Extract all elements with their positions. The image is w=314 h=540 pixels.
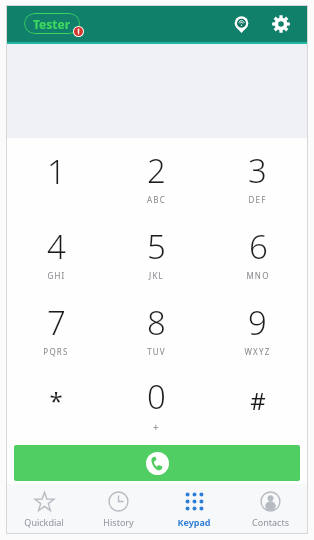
button[interactable]: Keypad <box>156 484 232 534</box>
staticText: 5 <box>147 224 166 269</box>
staticText: JKL <box>149 270 164 281</box>
button[interactable]: 5 <box>106 214 207 290</box>
staticText: 3 <box>248 148 267 193</box>
staticText: DEF <box>248 194 267 205</box>
button[interactable]: Tester <box>24 13 80 34</box>
staticText: Tester <box>33 16 71 32</box>
staticText: GHI <box>47 270 66 281</box>
button[interactable]: Location <box>226 9 256 39</box>
staticText: MNO <box>246 270 270 281</box>
button[interactable]: 7 <box>6 290 106 366</box>
button[interactable]: 0 <box>106 366 207 442</box>
staticText: 4 <box>47 224 66 269</box>
staticText: PQRS <box>43 346 69 357</box>
staticText: Contacts <box>252 516 289 528</box>
staticText: 9 <box>248 300 267 345</box>
staticText: Keypad <box>177 516 211 528</box>
staticText: History <box>103 516 134 528</box>
staticText: 2 <box>147 148 166 193</box>
button[interactable]: 6 <box>207 214 308 290</box>
staticText: 1 <box>47 149 66 194</box>
staticText: ABC <box>147 194 166 205</box>
staticText: 0 <box>147 374 166 419</box>
button[interactable]: 1 <box>6 138 106 214</box>
staticText: 6 <box>249 224 268 269</box>
button[interactable]: Settings <box>266 9 296 39</box>
button[interactable]: 9 <box>207 290 308 366</box>
staticText: 7 <box>47 300 66 345</box>
button[interactable]: History <box>81 484 156 534</box>
button[interactable]: Call <box>14 445 300 481</box>
staticText: + <box>153 420 160 434</box>
button[interactable]: # <box>207 366 308 442</box>
button[interactable]: Contacts <box>232 484 308 534</box>
button[interactable]: 3 <box>207 138 308 214</box>
staticText: Quickdial <box>24 516 64 528</box>
button[interactable]: 2 <box>106 138 207 214</box>
staticText: # <box>250 384 266 417</box>
staticText: 8 <box>147 300 166 345</box>
staticText: * <box>49 384 63 417</box>
staticText: TUV <box>147 346 166 357</box>
staticText: WXYZ <box>244 346 271 357</box>
button[interactable]: Quickdial <box>6 484 81 534</box>
button[interactable]: * <box>6 366 106 442</box>
button[interactable]: 8 <box>106 290 207 366</box>
button[interactable]: 4 <box>6 214 106 290</box>
